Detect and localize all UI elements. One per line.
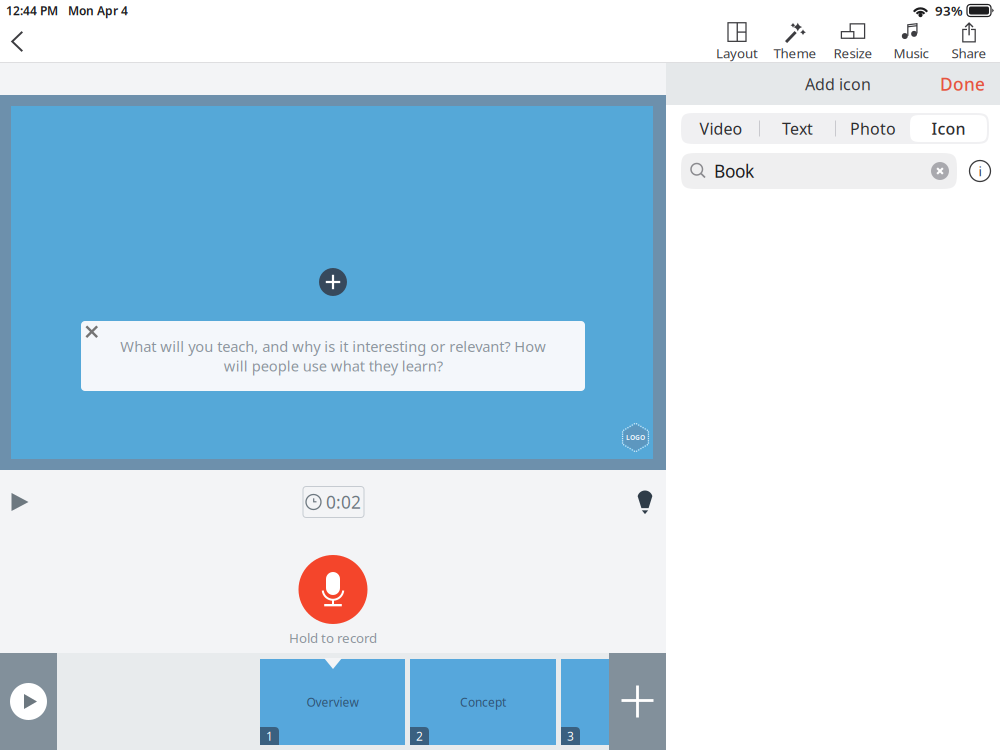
- button[interactable]: Add media: [319, 268, 347, 296]
- staticText: Layout: [716, 44, 758, 62]
- staticText: Hold to record: [289, 629, 377, 647]
- button[interactable]: Concept: [410, 659, 556, 745]
- staticText: Resize: [833, 44, 872, 62]
- staticText: Concept: [460, 694, 506, 710]
- button[interactable]: Overview: [260, 659, 405, 745]
- button[interactable]: Preview: [10, 683, 47, 720]
- button[interactable]: Icon: [910, 115, 987, 142]
- staticText: 93%: [935, 2, 963, 19]
- staticText: 2: [416, 728, 423, 744]
- staticText: Theme: [773, 44, 816, 62]
- button[interactable]: Add clip: [609, 653, 666, 750]
- button[interactable]: Music: [882, 21, 940, 62]
- staticText: Overview: [306, 694, 358, 710]
- staticText: 12:44 PM: [6, 2, 58, 18]
- button[interactable]: Resize: [824, 21, 882, 62]
- staticText: 3: [567, 728, 574, 744]
- button[interactable]: Back: [2, 21, 32, 62]
- staticText: LOGO: [626, 433, 645, 442]
- staticText: i: [978, 162, 981, 180]
- button[interactable]: Text: [760, 115, 835, 142]
- button[interactable]: Video: [683, 115, 759, 142]
- staticText: 1: [266, 728, 273, 744]
- staticText: Book: [714, 159, 754, 182]
- staticText: Photo: [850, 118, 896, 139]
- staticText: Text: [782, 118, 813, 139]
- button[interactable]: [561, 659, 610, 745]
- button[interactable]: Clear search: [927, 158, 953, 184]
- staticText: 0:02: [326, 490, 361, 513]
- staticText: Share: [951, 44, 986, 62]
- button[interactable]: Tips: [627, 480, 663, 524]
- staticText: Add icon: [805, 73, 871, 95]
- button[interactable]: Share: [940, 21, 998, 62]
- button[interactable]: Photo: [836, 115, 910, 142]
- staticText: Music: [893, 44, 928, 62]
- button[interactable]: Done: [940, 63, 985, 105]
- staticText: Video: [699, 118, 742, 139]
- staticText: What will you teach, and why is it inter…: [120, 336, 546, 375]
- button[interactable]: Play: [0, 480, 40, 524]
- button[interactable]: Theme: [766, 21, 824, 62]
- button[interactable]: Dismiss prompt: [84, 324, 100, 340]
- staticText: Done: [940, 72, 985, 95]
- staticText: Mon Apr 4: [68, 2, 128, 18]
- button[interactable]: Hold to record: [298, 555, 367, 624]
- staticText: Icon: [931, 118, 965, 139]
- button[interactable]: Information: [965, 153, 995, 189]
- button[interactable]: Layout: [708, 21, 766, 62]
